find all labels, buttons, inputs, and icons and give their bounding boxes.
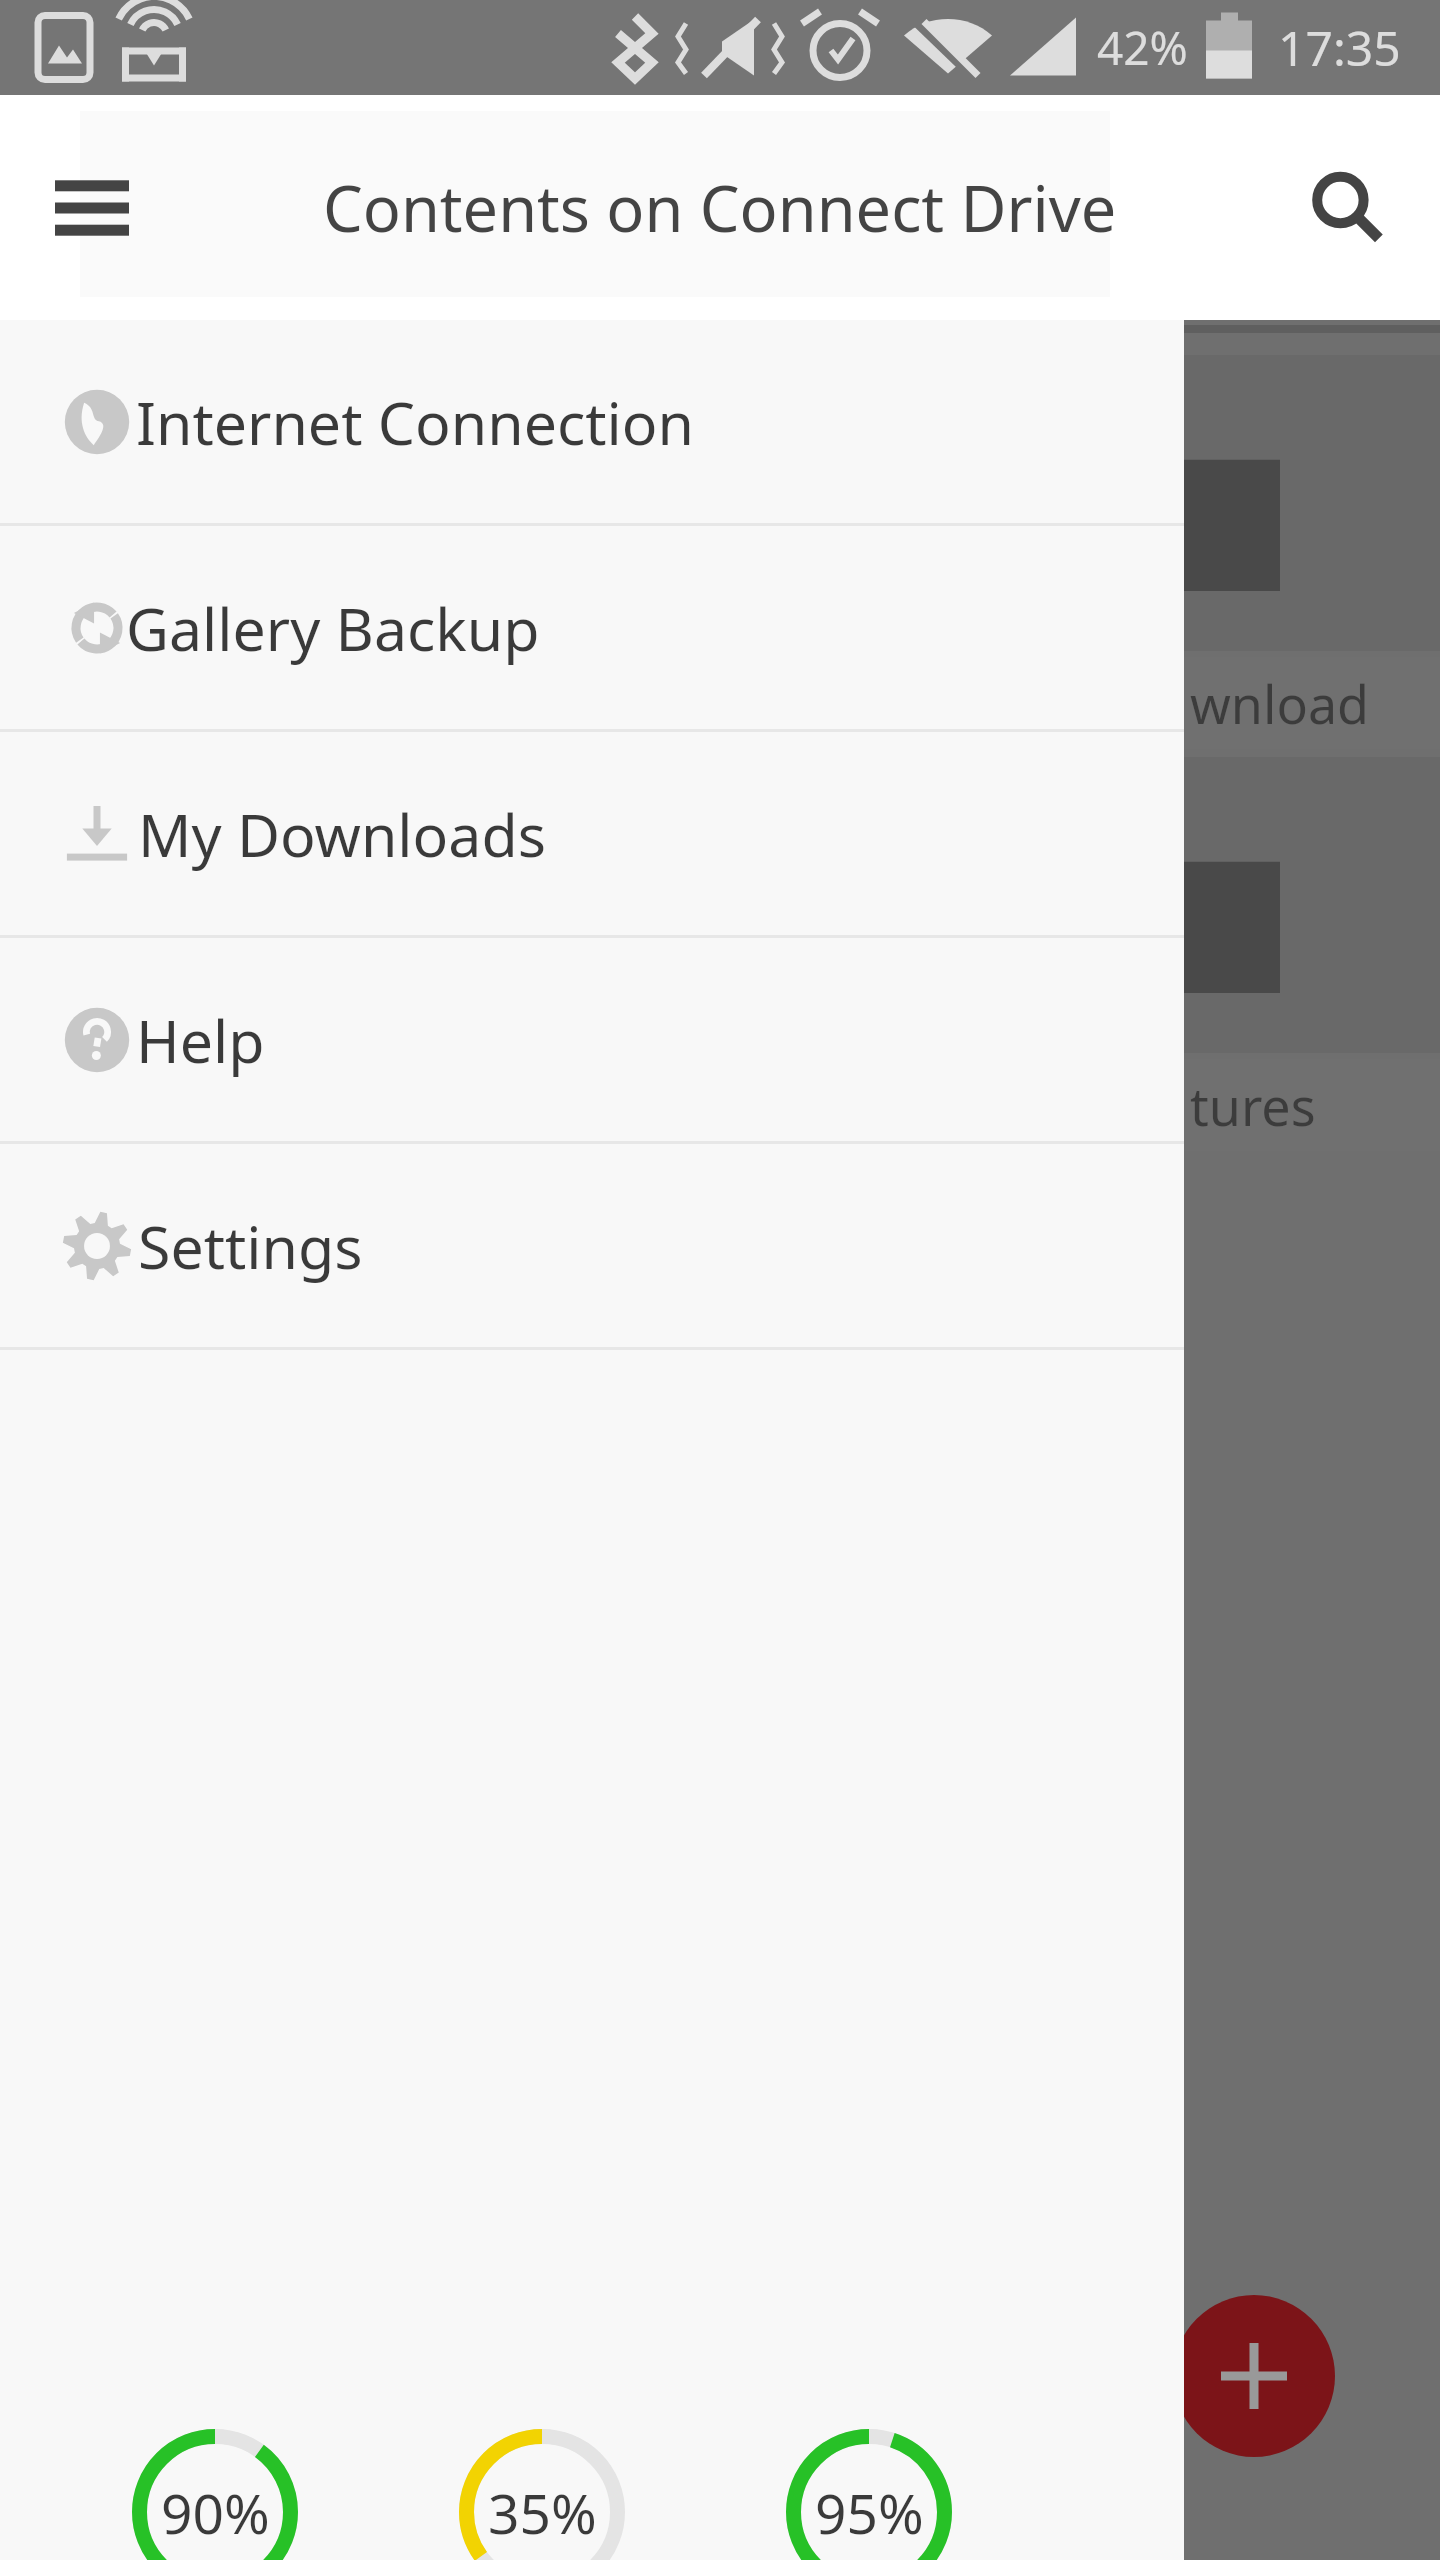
staticText: tures <box>1190 1070 1316 1141</box>
button[interactable]: My Downloads <box>0 732 1184 935</box>
button[interactable]: Internet Connection <box>0 320 1184 523</box>
staticText: 17:35 <box>1278 15 1401 80</box>
button[interactable]: Settings <box>0 1144 1184 1347</box>
staticText: Internet Connection <box>136 382 694 462</box>
staticText: wnload <box>1190 668 1370 739</box>
button[interactable]: Help <box>0 938 1184 1141</box>
staticText: My Downloads <box>138 794 546 874</box>
staticText: Help <box>136 1000 265 1080</box>
staticText: 42% <box>1097 16 1188 79</box>
button[interactable]: Add <box>1173 2295 1335 2457</box>
staticText: Gallery Backup <box>126 588 540 668</box>
staticText: 90% <box>161 2475 270 2550</box>
button[interactable]: Search <box>1286 148 1406 268</box>
staticText: Settings <box>138 1206 363 1286</box>
staticText: Contents on Connect Drive <box>323 165 1117 251</box>
button[interactable]: Open navigation drawer <box>30 146 154 270</box>
button[interactable]: Gallery Backup <box>0 526 1184 729</box>
staticText: 35% <box>488 2475 597 2550</box>
staticText: 95% <box>815 2475 924 2550</box>
